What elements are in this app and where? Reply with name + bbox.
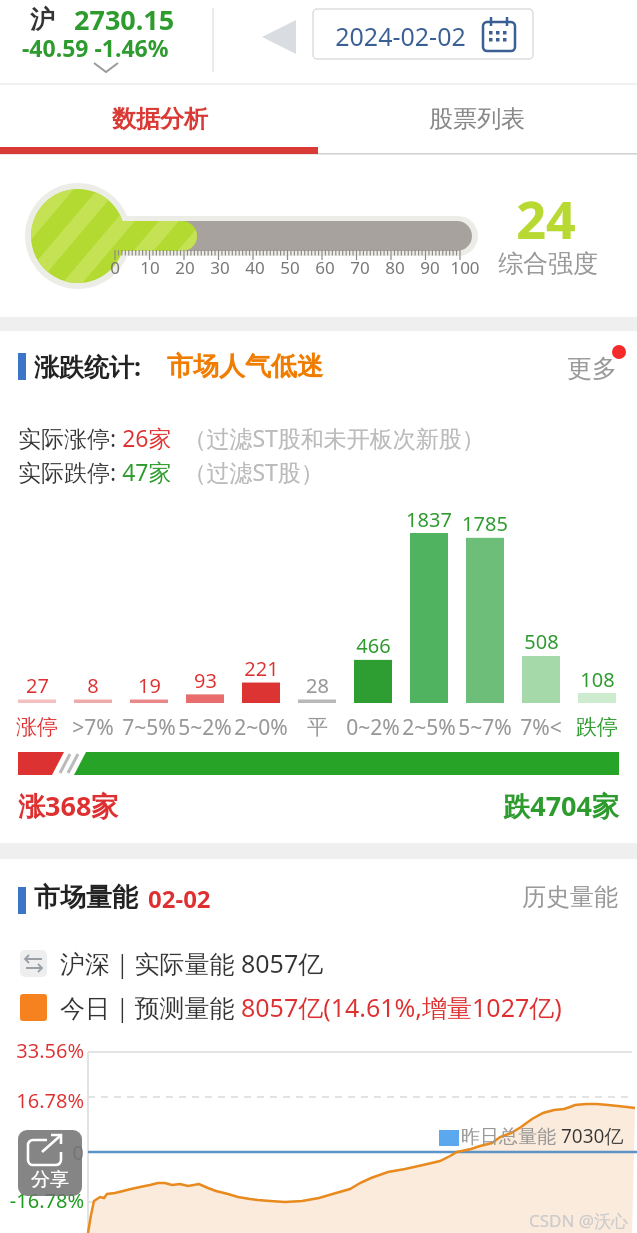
staticText: 平 — [307, 714, 328, 740]
staticText: 沪 — [30, 4, 55, 35]
staticText: >7% — [72, 713, 114, 742]
staticText: 1837 — [406, 506, 452, 533]
staticText: 综合强度 — [498, 248, 598, 279]
staticText: 8 — [87, 672, 99, 699]
staticText: 5~2% — [178, 713, 232, 742]
staticText: 100 — [450, 256, 480, 279]
staticText: 涨停 — [16, 714, 58, 740]
button[interactable]: 历史量能 — [218, 867, 618, 927]
staticText: 19 — [138, 672, 161, 699]
staticText: 市场人气低迷 — [167, 350, 323, 383]
staticText: 今日｜预测量能 8057亿(14.61%,增量1027亿) — [60, 990, 562, 1024]
staticText: 0 — [72, 1139, 84, 1166]
staticText: 28 — [306, 672, 329, 699]
staticText: 80 — [385, 256, 405, 279]
staticText: 沪深｜实际量能 8057亿 — [60, 946, 324, 980]
staticText: 108 — [580, 666, 615, 693]
staticText: 实际涨停: 26家 （过滤ST股和未开板次新股） — [18, 422, 485, 453]
staticText: 市场量能 — [34, 881, 138, 914]
staticText: 0 — [110, 256, 120, 279]
staticText: 0~2% — [346, 713, 400, 742]
staticText: 2~0% — [234, 713, 288, 742]
staticText: 33.56% — [16, 1037, 84, 1064]
staticText: 实际跌停: 47家 （过滤ST股） — [18, 456, 324, 487]
staticText: 16.78% — [16, 1087, 84, 1114]
staticText: 10 — [140, 256, 160, 279]
staticText: 1785 — [462, 510, 508, 537]
staticText: 60 — [315, 256, 335, 279]
staticText: 历史量能 — [522, 882, 618, 912]
staticText: 数据分析 — [112, 104, 208, 134]
staticText: 昨日总量能 7030亿 — [461, 1123, 624, 1149]
staticText: 股票列表 — [429, 104, 525, 134]
staticText: 24 — [516, 183, 576, 243]
staticText: 466 — [356, 632, 391, 659]
staticText: 2024-02-02 — [335, 19, 466, 53]
staticText: 02-02 — [148, 882, 211, 915]
button[interactable]: 更多 — [217, 338, 617, 398]
staticText: 40 — [245, 256, 265, 279]
staticText: 分享 — [31, 1168, 69, 1192]
staticText: CSDN @沃心 — [528, 1209, 628, 1232]
staticText: 跌4704家 — [503, 787, 619, 824]
staticText: 7~5% — [122, 713, 176, 742]
staticText: 93 — [194, 667, 217, 694]
staticText: 30 — [210, 256, 230, 279]
button[interactable]: 数据分析 — [0, 89, 460, 149]
staticText: 涨368家 — [18, 787, 119, 824]
button[interactable]: 2024-02-02 — [100, 6, 637, 66]
staticText: 跌停 — [576, 714, 618, 740]
button[interactable]: 分享 — [18, 1130, 82, 1196]
staticText: 90 — [420, 256, 440, 279]
staticText: 20 — [175, 256, 195, 279]
staticText: -40.59 -1.46% — [22, 32, 169, 63]
staticText: 221 — [244, 655, 279, 682]
staticText: 2~5% — [402, 713, 456, 742]
staticText: 7%< — [520, 713, 562, 742]
staticText: 更多 — [567, 353, 617, 384]
staticText: 27 — [26, 672, 49, 699]
staticText: 50 — [280, 256, 300, 279]
staticText: 508 — [524, 628, 559, 655]
staticText: 70 — [350, 256, 370, 279]
staticText: 涨跌统计: — [34, 349, 142, 383]
staticText: -16.78% — [9, 1187, 84, 1214]
staticText: 5~7% — [458, 713, 512, 742]
staticText: 2730.15 — [74, 1, 175, 38]
button[interactable]: 股票列表 — [177, 89, 637, 149]
